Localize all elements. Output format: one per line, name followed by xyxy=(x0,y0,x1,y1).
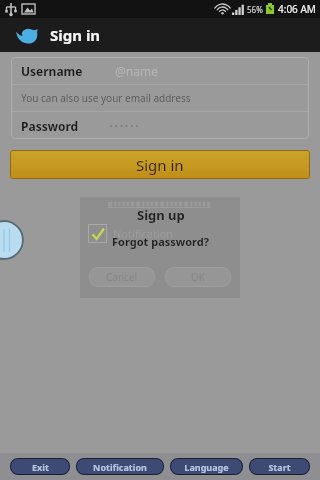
staticText: You can also use your email address xyxy=(21,91,191,105)
staticText: Language xyxy=(184,461,229,473)
button[interactable]: Sign up xyxy=(131,205,191,225)
button[interactable]: OK xyxy=(165,267,231,287)
staticText: Sign up xyxy=(137,206,185,224)
staticText: Forgot password? xyxy=(112,234,209,249)
staticText: Exit xyxy=(32,461,49,473)
staticText: @name xyxy=(115,63,158,79)
staticText: Password xyxy=(21,118,79,134)
staticText: Sign in xyxy=(136,155,184,175)
staticText: OK xyxy=(191,270,205,284)
button[interactable]: Notification xyxy=(76,458,164,475)
button[interactable]: Language xyxy=(170,458,243,475)
button[interactable]: Username xyxy=(11,57,309,84)
staticText: 56% xyxy=(247,4,263,15)
staticText: Notification xyxy=(113,226,174,241)
staticText: Start xyxy=(268,461,291,473)
button[interactable]: Forgot password? xyxy=(106,233,215,250)
staticText: Sign in xyxy=(50,25,101,45)
button[interactable]: Sign in xyxy=(10,150,310,179)
staticText: Notification xyxy=(93,461,147,473)
staticText: Cancel xyxy=(106,270,138,284)
button[interactable]: Password xyxy=(11,112,309,139)
staticText: Username xyxy=(21,63,83,79)
button[interactable]: Start xyxy=(249,458,310,475)
staticText: 4:06 AM xyxy=(278,2,316,16)
other: Indicator xyxy=(0,220,24,260)
other: Twitter xyxy=(16,26,38,44)
button[interactable]: Exit xyxy=(10,458,70,475)
button[interactable]: Cancel xyxy=(89,267,155,287)
